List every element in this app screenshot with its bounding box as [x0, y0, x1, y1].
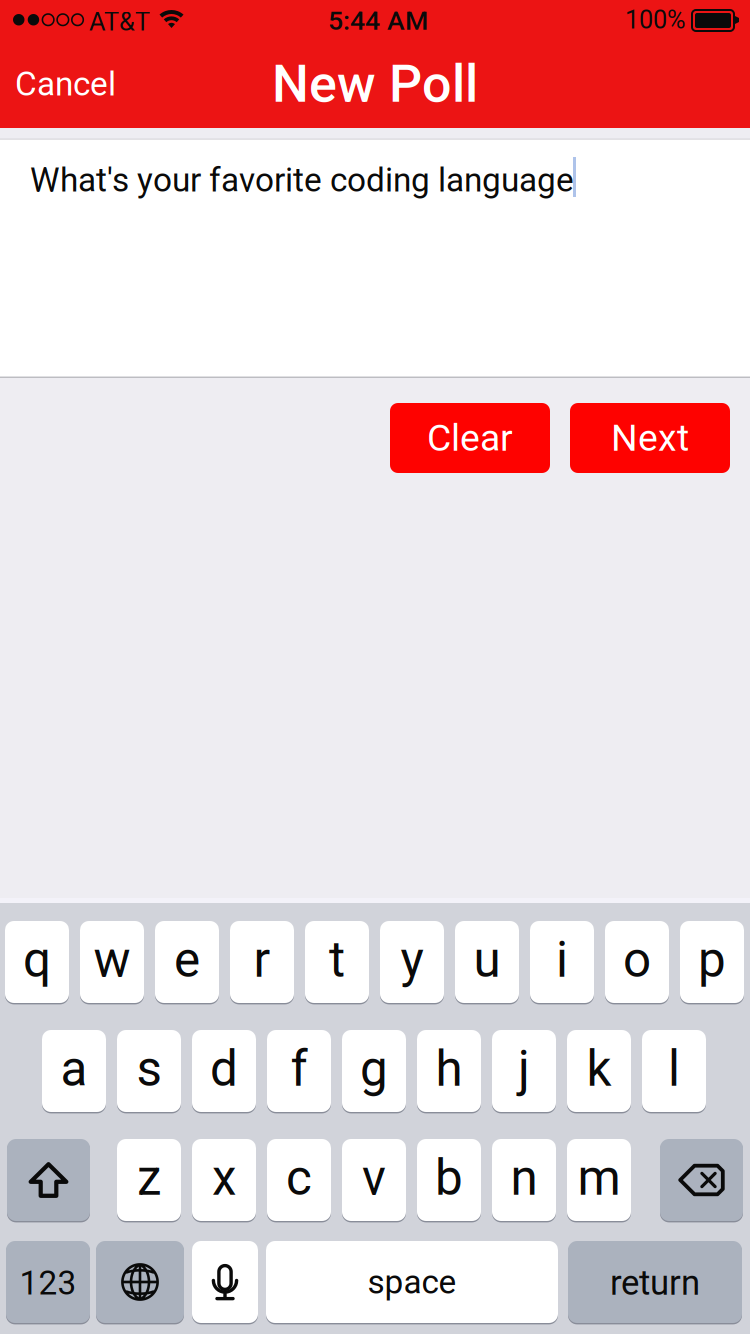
staticText: d: [210, 1040, 238, 1098]
button[interactable]: e: [155, 921, 219, 1004]
staticText: e: [174, 931, 200, 989]
staticText: m: [577, 1149, 620, 1207]
staticText: r: [253, 931, 270, 989]
staticText: Clear: [427, 416, 513, 460]
staticText: j: [518, 1040, 530, 1098]
button[interactable]: k: [567, 1030, 631, 1113]
button[interactable]: Next keyboard: [96, 1241, 184, 1324]
staticText: AT&T: [89, 7, 150, 37]
button[interactable]: n: [492, 1139, 556, 1222]
staticText: y: [400, 931, 423, 989]
staticText: v: [362, 1149, 386, 1207]
button[interactable]: m: [567, 1139, 631, 1222]
button[interactable]: y: [380, 921, 444, 1004]
button[interactable]: z: [117, 1139, 181, 1222]
button[interactable]: Clear: [390, 403, 550, 473]
button[interactable]: Cancel: [0, 40, 150, 128]
staticText: i: [556, 931, 568, 989]
staticText: s: [136, 1040, 161, 1098]
button[interactable]: q: [5, 921, 69, 1004]
button[interactable]: b: [417, 1139, 481, 1222]
button[interactable]: 123: [6, 1241, 90, 1324]
button[interactable]: d: [192, 1030, 256, 1113]
staticText: p: [698, 931, 726, 989]
button[interactable]: f: [267, 1030, 331, 1113]
button[interactable]: l: [642, 1030, 706, 1113]
button[interactable]: r: [230, 921, 294, 1004]
button[interactable]: t: [305, 921, 369, 1004]
staticText: x: [212, 1149, 236, 1207]
button[interactable]: c: [267, 1139, 331, 1222]
staticText: q: [23, 931, 51, 989]
button[interactable]: Delete: [660, 1139, 743, 1222]
staticText: 100%: [625, 5, 686, 35]
button[interactable]: a: [42, 1030, 106, 1113]
staticText: n: [510, 1149, 537, 1207]
button[interactable]: s: [117, 1030, 181, 1113]
button[interactable]: o: [605, 921, 669, 1004]
button[interactable]: g: [342, 1030, 406, 1113]
staticText: space: [367, 1262, 456, 1302]
button[interactable]: Shift: [7, 1139, 90, 1222]
staticText: h: [435, 1040, 462, 1098]
staticText: Next: [611, 416, 689, 460]
staticText: l: [668, 1040, 680, 1098]
staticText: a: [60, 1040, 87, 1098]
button[interactable]: w: [80, 921, 144, 1004]
staticText: f: [290, 1040, 307, 1098]
button[interactable]: p: [680, 921, 744, 1004]
button[interactable]: v: [342, 1139, 406, 1222]
staticText: o: [623, 931, 651, 989]
staticText: 5:44 AM: [328, 5, 428, 36]
staticText: c: [286, 1149, 312, 1207]
staticText: z: [137, 1149, 161, 1207]
staticText: Cancel: [15, 64, 116, 104]
button[interactable]: u: [455, 921, 519, 1004]
button[interactable]: h: [417, 1030, 481, 1113]
staticText: return: [610, 1263, 700, 1303]
button[interactable]: Next: [570, 403, 730, 473]
staticText: t: [329, 931, 345, 989]
button[interactable]: j: [492, 1030, 556, 1113]
button[interactable]: Dictation: [192, 1241, 258, 1324]
staticText: 123: [19, 1263, 76, 1303]
staticText: w: [93, 931, 130, 989]
button[interactable]: return: [568, 1241, 742, 1324]
button[interactable]: space: [266, 1241, 558, 1324]
button[interactable]: x: [192, 1139, 256, 1222]
staticText: New Poll: [272, 53, 478, 114]
staticText: b: [435, 1149, 463, 1207]
staticText: g: [360, 1040, 388, 1098]
button[interactable]: i: [530, 921, 594, 1004]
staticText: What's your favorite coding language: [30, 160, 574, 200]
staticText: u: [473, 931, 500, 989]
staticText: k: [586, 1040, 611, 1098]
